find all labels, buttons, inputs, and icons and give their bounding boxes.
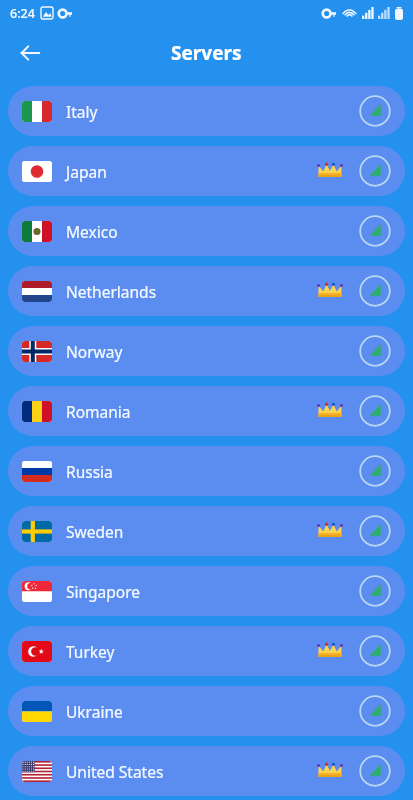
staticText: Mexico xyxy=(66,221,317,242)
button[interactable]: United States xyxy=(8,746,405,796)
button[interactable]: Norway xyxy=(8,326,405,376)
staticText: Servers xyxy=(171,40,242,66)
staticText: Japan xyxy=(66,161,317,182)
button[interactable]: Italy xyxy=(8,86,405,136)
staticText: Romania xyxy=(66,401,317,422)
button[interactable]: Back xyxy=(8,31,52,75)
staticText: Ukraine xyxy=(66,701,317,722)
button[interactable]: Ukraine xyxy=(8,686,405,736)
button[interactable]: Mexico xyxy=(8,206,405,256)
staticText: Italy xyxy=(66,101,317,122)
staticText: Russia xyxy=(66,461,317,482)
button[interactable]: Japan xyxy=(8,146,405,196)
staticText: Sweden xyxy=(66,521,317,542)
staticText: Norway xyxy=(66,341,317,362)
staticText: Turkey xyxy=(66,641,317,662)
button[interactable]: Netherlands xyxy=(8,266,405,316)
button[interactable]: Sweden xyxy=(8,506,405,556)
button[interactable]: Russia xyxy=(8,446,405,496)
staticText: United States xyxy=(66,761,317,782)
staticText: Netherlands xyxy=(66,281,317,302)
button[interactable]: Romania xyxy=(8,386,405,436)
button[interactable]: Turkey xyxy=(8,626,405,676)
staticText: Singapore xyxy=(66,581,317,602)
button[interactable]: Singapore xyxy=(8,566,405,616)
staticText: 6:24 xyxy=(10,5,35,22)
